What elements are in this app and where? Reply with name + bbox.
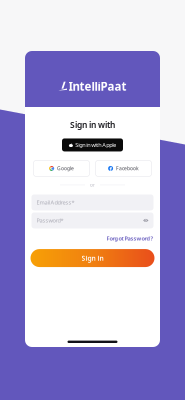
staticText: Sign in xyxy=(81,253,103,263)
staticText: IntelliPaat xyxy=(69,78,127,94)
staticText: Facebook xyxy=(116,165,139,172)
staticText: Password* xyxy=(36,217,63,224)
staticText: Sign in with Apple xyxy=(75,141,116,149)
staticText: Forgot Password? xyxy=(106,234,153,242)
staticText: or xyxy=(90,182,95,188)
button[interactable]: Forgot Password? xyxy=(106,234,153,242)
staticText: Google xyxy=(57,165,74,172)
button[interactable]: Email Address* xyxy=(31,194,153,210)
button[interactable]: Google xyxy=(33,160,89,176)
staticText: Sign in with xyxy=(70,119,115,130)
button[interactable]: Sign in with Apple xyxy=(62,138,123,151)
button[interactable]: Facebook xyxy=(95,160,151,176)
staticText: Email Address* xyxy=(36,199,74,206)
button[interactable]: Password* xyxy=(31,212,153,228)
button[interactable]: Sign in xyxy=(30,249,154,267)
